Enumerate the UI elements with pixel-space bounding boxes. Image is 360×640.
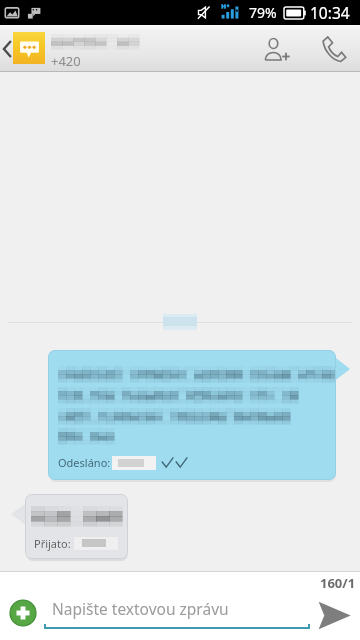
staticText: Napište textovou zprávu bbox=[52, 598, 229, 619]
button[interactable]: Call bbox=[310, 30, 356, 68]
staticText: Odesláno: bbox=[58, 455, 111, 470]
button[interactable]: Napište textovou zprávu bbox=[44, 593, 310, 633]
button[interactable]: Add attachment bbox=[4, 594, 42, 632]
button[interactable]: Odesláno: bbox=[48, 350, 336, 480]
button[interactable]: Add contact bbox=[254, 30, 300, 68]
staticText: Přijato: bbox=[34, 536, 71, 551]
button[interactable]: Přijato: bbox=[25, 494, 128, 559]
button[interactable]: Send bbox=[310, 591, 358, 639]
button[interactable]: Conversation icon bbox=[13, 32, 45, 64]
staticText: 160/1 bbox=[320, 574, 356, 592]
staticText: 79% bbox=[249, 3, 277, 22]
staticText: 10:34 bbox=[310, 2, 350, 23]
staticText: +420 bbox=[51, 52, 81, 70]
button[interactable]: +420 bbox=[51, 25, 251, 72]
button[interactable]: Back bbox=[0, 25, 14, 72]
